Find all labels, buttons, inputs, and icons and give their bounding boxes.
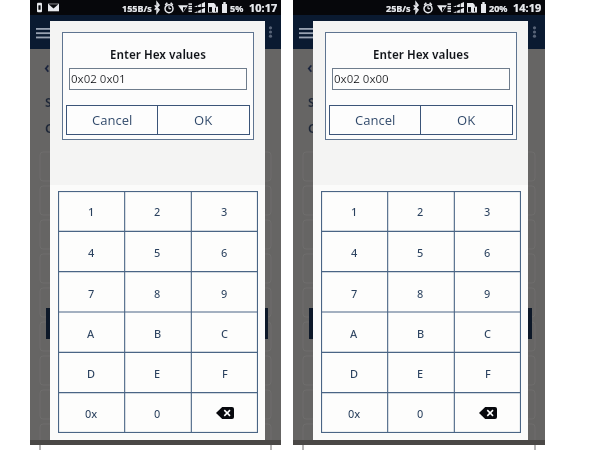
- staticText: 8: [417, 286, 424, 301]
- button[interactable]: 4: [58, 232, 124, 273]
- staticText: ‹: [307, 56, 313, 78]
- staticText: 7: [351, 286, 358, 301]
- other: Backspace: [216, 407, 234, 419]
- staticText: C: [308, 120, 316, 136]
- staticText: B: [154, 326, 162, 341]
- staticText: S: [45, 94, 52, 110]
- staticText: Cancel: [355, 111, 396, 129]
- staticText: 20%: [489, 2, 508, 14]
- button[interactable]: 2: [124, 191, 191, 232]
- button[interactable]: C: [454, 313, 521, 353]
- button[interactable]: 9: [191, 273, 258, 313]
- staticText: 0x: [348, 406, 361, 421]
- button[interactable]: 7: [58, 273, 124, 313]
- button[interactable]: 3: [454, 191, 521, 232]
- button[interactable]: Backspace: [454, 393, 521, 433]
- button[interactable]: 0: [124, 393, 191, 433]
- button[interactable]: 5: [387, 232, 454, 273]
- button[interactable]: F: [191, 353, 258, 393]
- staticText: C: [484, 326, 491, 341]
- button[interactable]: D: [321, 353, 387, 393]
- button[interactable]: 8: [387, 273, 454, 313]
- staticText: F: [485, 366, 491, 381]
- staticText: A: [350, 326, 358, 341]
- staticText: 2: [417, 204, 424, 219]
- staticText: 4: [88, 245, 95, 260]
- staticText: ‹: [44, 56, 50, 78]
- staticText: A: [87, 326, 95, 341]
- staticText: B: [417, 326, 425, 341]
- staticText: E: [417, 366, 424, 381]
- staticText: S: [308, 94, 315, 110]
- staticText: 6: [484, 245, 491, 260]
- staticText: 7: [88, 286, 95, 301]
- staticText: 5: [154, 245, 161, 260]
- button[interactable]: A: [58, 313, 124, 353]
- button[interactable]: 5: [124, 232, 191, 273]
- button[interactable]: Cancel: [67, 106, 157, 134]
- button[interactable]: 0x: [58, 393, 124, 433]
- staticText: OK: [194, 111, 213, 129]
- staticText: 14:19: [513, 0, 542, 15]
- button[interactable]: B: [124, 313, 191, 353]
- staticText: 9: [484, 286, 491, 301]
- staticText: 3: [221, 204, 228, 219]
- staticText: 5: [417, 245, 424, 260]
- staticText: 25B/s: [386, 2, 411, 14]
- staticText: C: [221, 326, 228, 341]
- button[interactable]: 1: [321, 191, 387, 232]
- staticText: E: [154, 366, 161, 381]
- staticText: F: [222, 366, 228, 381]
- button[interactable]: Backspace: [191, 393, 258, 433]
- button[interactable]: 4: [321, 232, 387, 273]
- staticText: 4: [351, 245, 358, 260]
- staticText: 2: [154, 204, 161, 219]
- button[interactable]: More options: [261, 23, 279, 41]
- staticText: 1: [351, 204, 358, 219]
- button[interactable]: 9: [454, 273, 521, 313]
- staticText: 5%: [230, 2, 244, 14]
- button[interactable]: Cancel: [330, 106, 420, 134]
- staticText: 0: [154, 406, 161, 421]
- button[interactable]: 6: [454, 232, 521, 273]
- staticText: D: [350, 366, 359, 381]
- staticText: Enter Hex values: [326, 47, 516, 63]
- button[interactable]: Open navigation drawer: [296, 22, 316, 42]
- button[interactable]: D: [58, 353, 124, 393]
- button[interactable]: C: [191, 313, 258, 353]
- staticText: 9: [221, 286, 228, 301]
- button[interactable]: F: [454, 353, 521, 393]
- button[interactable]: 7: [321, 273, 387, 313]
- button[interactable]: OK: [158, 106, 249, 134]
- staticText: 8: [154, 286, 161, 301]
- button[interactable]: More options: [525, 23, 543, 41]
- button[interactable]: 6: [191, 232, 258, 273]
- button[interactable]: B: [387, 313, 454, 353]
- staticText: 1: [88, 204, 95, 219]
- staticText: D: [87, 366, 96, 381]
- other: Backspace: [479, 407, 497, 419]
- staticText: OK: [457, 111, 476, 129]
- staticText: 6: [221, 245, 228, 260]
- button[interactable]: 0: [387, 393, 454, 433]
- button[interactable]: 1: [58, 191, 124, 232]
- button[interactable]: 8: [124, 273, 191, 313]
- staticText: 0x02 0x01: [71, 71, 126, 87]
- button[interactable]: E: [387, 353, 454, 393]
- staticText: 0x02 0x00: [334, 71, 389, 87]
- staticText: 10:17: [249, 0, 278, 15]
- button[interactable]: 3: [191, 191, 258, 232]
- button[interactable]: Open navigation drawer: [33, 22, 53, 42]
- staticText: 155B/s: [122, 2, 152, 14]
- staticText: 3: [484, 204, 491, 219]
- button[interactable]: 2: [387, 191, 454, 232]
- button[interactable]: OK: [421, 106, 512, 134]
- button[interactable]: 0x: [321, 393, 387, 433]
- staticText: 0: [417, 406, 424, 421]
- staticText: Cancel: [92, 111, 133, 129]
- button[interactable]: E: [124, 353, 191, 393]
- staticText: 0x: [85, 406, 98, 421]
- staticText: Enter Hex values: [63, 47, 253, 63]
- button[interactable]: A: [321, 313, 387, 353]
- staticText: C: [45, 120, 53, 136]
